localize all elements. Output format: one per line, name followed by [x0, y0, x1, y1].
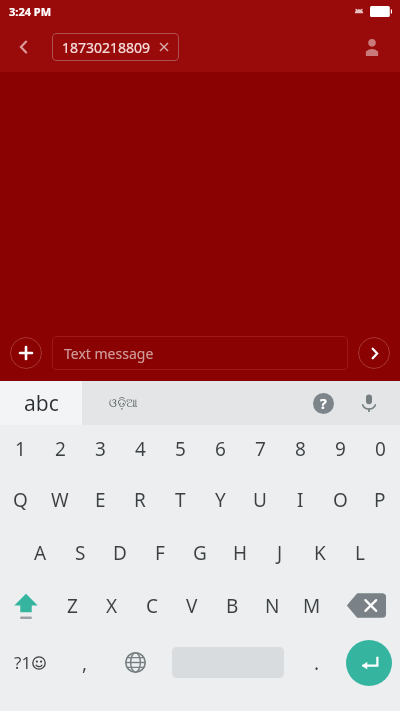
button[interactable]: M — [292, 579, 332, 632]
button[interactable]: K — [300, 526, 340, 579]
button[interactable]: Enter — [346, 640, 392, 686]
staticText: V — [186, 593, 198, 619]
staticText: D — [113, 540, 127, 566]
button[interactable]: W — [40, 473, 80, 526]
button[interactable]: ଓଡ଼ିଆ — [82, 381, 164, 425]
staticText: F — [155, 540, 165, 566]
button[interactable]: S — [60, 526, 100, 579]
button[interactable]: 1 — [0, 425, 40, 473]
button[interactable]: E — [80, 473, 120, 526]
staticText: , — [82, 650, 88, 676]
staticText: 9 — [335, 436, 346, 462]
staticText: 4 — [135, 436, 146, 462]
button[interactable]: 3 — [80, 425, 120, 473]
staticText: 3:24 PM — [9, 4, 52, 19]
button[interactable]: I — [280, 473, 320, 526]
button[interactable]: X — [92, 579, 132, 632]
button[interactable]: Q — [0, 473, 40, 526]
button[interactable]: 7 — [240, 425, 280, 473]
staticText: 18730218809 — [62, 38, 151, 57]
button[interactable]: B — [212, 579, 252, 632]
button[interactable]: ?1 — [0, 632, 60, 693]
staticText: 2 — [55, 436, 66, 462]
button[interactable]: abc — [0, 381, 82, 425]
button[interactable]: D — [100, 526, 140, 579]
button[interactable]: 9 — [320, 425, 360, 473]
staticText: A — [34, 540, 47, 566]
button[interactable]: , — [60, 632, 110, 693]
button[interactable]: H — [220, 526, 260, 579]
staticText: X — [106, 593, 118, 619]
button[interactable]: 0 — [360, 425, 400, 473]
staticText: 3 — [95, 436, 106, 462]
button[interactable]: T — [160, 473, 200, 526]
button[interactable]: Back — [6, 29, 42, 65]
button[interactable]: . — [296, 632, 338, 693]
staticText: Q — [13, 487, 28, 513]
staticText: J — [277, 540, 283, 566]
button[interactable]: Attach — [10, 337, 42, 369]
button[interactable]: 8 — [280, 425, 320, 473]
button[interactable]: Contact — [352, 27, 392, 67]
staticText: R — [134, 487, 146, 513]
button[interactable]: Shift — [0, 579, 52, 632]
button[interactable]: 2 — [40, 425, 80, 473]
button[interactable]: C — [132, 579, 172, 632]
staticText: B — [226, 593, 239, 619]
staticText: N — [265, 593, 280, 619]
button[interactable]: J — [260, 526, 300, 579]
staticText: 1 — [15, 436, 26, 462]
staticText: E — [95, 487, 106, 513]
staticText: L — [355, 540, 365, 566]
staticText: K — [314, 540, 326, 566]
button[interactable]: V — [172, 579, 212, 632]
staticText: 5 — [175, 436, 186, 462]
button[interactable]: G — [180, 526, 220, 579]
button[interactable]: N — [252, 579, 292, 632]
staticText: I — [297, 487, 304, 513]
staticText: G — [193, 540, 207, 566]
staticText: 0 — [375, 436, 386, 462]
button[interactable]: U — [240, 473, 280, 526]
staticText: ?1 — [14, 651, 32, 674]
staticText: H — [233, 540, 248, 566]
button[interactable]: 6 — [200, 425, 240, 473]
staticText: U — [253, 487, 267, 513]
button[interactable]: A — [20, 526, 60, 579]
button[interactable]: 5 — [160, 425, 200, 473]
staticText: ଓଡ଼ିଆ — [109, 397, 138, 409]
staticText: W — [51, 487, 69, 513]
button[interactable]: R — [120, 473, 160, 526]
staticText: Z — [67, 593, 78, 619]
staticText: S — [75, 540, 86, 566]
button[interactable]: L — [340, 526, 380, 579]
staticText: P — [374, 487, 386, 513]
staticText: O — [333, 487, 348, 513]
button[interactable]: Voice input — [352, 386, 386, 420]
button[interactable]: Text message — [52, 336, 348, 370]
button[interactable]: 4 — [120, 425, 160, 473]
button[interactable]: Z — [52, 579, 92, 632]
staticText: T — [175, 487, 186, 513]
staticText: 7 — [255, 436, 266, 462]
staticText: C — [146, 593, 159, 619]
staticText: Y — [215, 487, 226, 513]
button[interactable]: P — [360, 473, 400, 526]
staticText: M — [303, 593, 321, 619]
button[interactable]: Send — [358, 337, 390, 369]
staticText: . — [314, 650, 320, 676]
staticText: Text message — [64, 344, 154, 363]
staticText: 6 — [215, 436, 226, 462]
button[interactable]: Y — [200, 473, 240, 526]
button[interactable]: Change language — [110, 632, 160, 693]
button[interactable]: Backspace — [332, 579, 400, 632]
staticText: 8 — [295, 436, 306, 462]
staticText: ? — [320, 394, 327, 413]
staticText: abc — [24, 389, 59, 418]
button[interactable]: Help — [306, 386, 340, 420]
button[interactable]: 18730218809 — [52, 33, 179, 61]
button[interactable]: F — [140, 526, 180, 579]
button[interactable]: O — [320, 473, 360, 526]
